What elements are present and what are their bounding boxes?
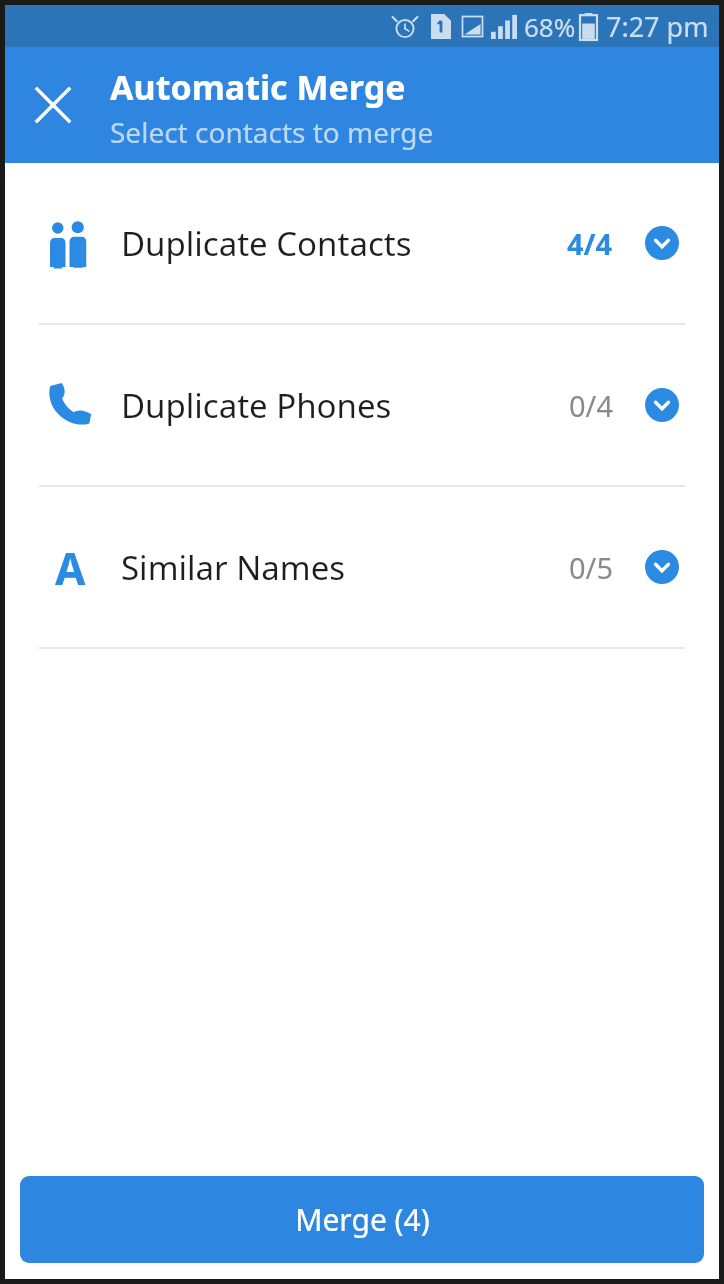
staticText: 4/4 (567, 224, 613, 263)
button[interactable]: Duplicate Phones (5, 325, 719, 485)
staticText: Select contacts to merge (110, 113, 434, 151)
staticText: Duplicate Phones (121, 383, 392, 428)
button[interactable]: Expand Duplicate Phones (639, 382, 685, 428)
button[interactable]: Merge (4) (20, 1176, 704, 1263)
staticText: Duplicate Contacts (121, 221, 412, 266)
button[interactable]: Expand Duplicate Contacts (639, 220, 685, 266)
button[interactable]: A (5, 487, 719, 647)
button[interactable]: Expand Similar Names (639, 544, 685, 590)
staticText: 7:27 pm (606, 8, 709, 45)
staticText: Similar Names (121, 545, 346, 590)
button[interactable]: Duplicate Contacts (5, 163, 719, 323)
staticText: 0/5 (569, 548, 613, 587)
staticText: A (55, 538, 86, 596)
staticText: 68% (524, 9, 576, 44)
staticText: Merge (4) (295, 1199, 430, 1240)
button[interactable]: Close (19, 71, 87, 139)
staticText: 0/4 (569, 386, 613, 425)
staticText: Automatic Merge (110, 64, 406, 110)
